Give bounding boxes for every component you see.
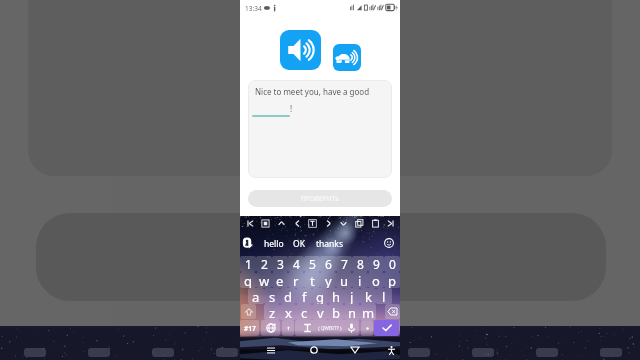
- button[interactable]: OK: [293, 238, 305, 250]
- button[interactable]: c: [296, 304, 312, 320]
- button[interactable]: 7: [336, 256, 352, 272]
- button[interactable]: d: [280, 288, 296, 304]
- button[interactable]: w: [256, 272, 272, 288]
- button[interactable]: Assistant: [242, 237, 253, 249]
- staticText: !: [290, 103, 293, 114]
- button[interactable]: Play slowly: [333, 44, 361, 71]
- staticText: 13:34: [245, 4, 262, 13]
- button[interactable]: p: [384, 272, 400, 288]
- staticText: p: [388, 272, 396, 288]
- button[interactable]: a: [248, 288, 264, 304]
- staticText: 2: [261, 256, 268, 272]
- button[interactable]: Symbols: [240, 320, 259, 336]
- button[interactable]: 3: [272, 256, 288, 272]
- button[interactable]: z: [264, 304, 280, 320]
- button[interactable]: 8: [352, 256, 368, 272]
- staticText: Nice to meet you, have a good: [255, 86, 370, 97]
- button[interactable]: 0: [384, 256, 400, 272]
- staticText: u: [340, 272, 349, 288]
- button[interactable]: thanks: [316, 238, 343, 250]
- button[interactable]: Select all: [244, 217, 256, 229]
- button[interactable]: Enter: [374, 320, 399, 336]
- staticText: #17: [244, 324, 256, 333]
- staticText: y: [325, 272, 332, 288]
- staticText: 6: [325, 256, 332, 272]
- staticText: t: [310, 272, 315, 288]
- staticText: f: [302, 288, 307, 304]
- button[interactable]: g: [312, 288, 328, 304]
- button[interactable]: Emoji: [384, 238, 394, 248]
- staticText: ПРОВЕРИТЬ: [301, 194, 340, 203]
- button[interactable]: Space: [295, 320, 359, 336]
- button[interactable]: m: [360, 304, 376, 320]
- button[interactable]: Voice input: [344, 320, 359, 336]
- button[interactable]: 5: [304, 256, 320, 272]
- button[interactable]: Select: [259, 217, 271, 229]
- button[interactable]: Up: [275, 217, 287, 229]
- button[interactable]: Down: [337, 217, 349, 229]
- button[interactable]: y: [320, 272, 336, 288]
- button[interactable]: Text: [306, 217, 318, 229]
- staticText: 0: [389, 256, 396, 272]
- staticText: a: [252, 288, 260, 304]
- button[interactable]: End: [384, 217, 396, 229]
- button[interactable]: 2: [256, 256, 272, 272]
- button[interactable]: u: [336, 272, 352, 288]
- button[interactable]: h: [328, 288, 344, 304]
- button[interactable]: Comma: [282, 320, 294, 336]
- staticText: v: [317, 304, 324, 320]
- button[interactable]: f: [296, 288, 312, 304]
- button[interactable]: v: [312, 304, 328, 320]
- button[interactable]: o: [368, 272, 384, 288]
- button[interactable]: b: [328, 304, 344, 320]
- button[interactable]: ПРОВЕРИТЬ: [248, 190, 392, 207]
- button[interactable]: Backspace: [385, 304, 400, 319]
- button[interactable]: k: [360, 288, 376, 304]
- button[interactable]: Paste: [369, 217, 381, 229]
- button[interactable]: i: [352, 272, 368, 288]
- staticText: b: [332, 304, 340, 320]
- staticText: l: [382, 288, 386, 304]
- staticText: s: [269, 288, 276, 304]
- button[interactable]: t: [304, 272, 320, 288]
- button[interactable]: Play pronunciation: [280, 30, 321, 70]
- staticText: 8: [357, 256, 364, 272]
- button[interactable]: x: [280, 304, 296, 320]
- staticText: h: [332, 288, 341, 304]
- button[interactable]: r: [288, 272, 304, 288]
- button[interactable]: n: [344, 304, 360, 320]
- staticText: 3: [277, 256, 284, 272]
- button[interactable]: 1: [240, 256, 256, 272]
- button[interactable]: Left: [291, 217, 303, 229]
- button[interactable]: q: [240, 272, 256, 288]
- button[interactable]: e: [272, 272, 288, 288]
- staticText: q: [244, 272, 252, 288]
- button[interactable]: Back: [349, 344, 361, 356]
- staticText: e: [276, 272, 284, 288]
- button[interactable]: 4: [288, 256, 304, 272]
- button[interactable]: 9: [368, 256, 384, 272]
- button[interactable]: Recents: [265, 344, 277, 356]
- staticText: 4: [293, 256, 300, 272]
- staticText: 5: [309, 256, 316, 272]
- staticText: 7: [341, 256, 348, 272]
- staticText: r: [293, 272, 299, 288]
- button[interactable]: hello: [264, 238, 284, 250]
- staticText: o: [372, 272, 380, 288]
- button[interactable]: Shift: [241, 304, 256, 319]
- button[interactable]: Right: [322, 217, 334, 229]
- button[interactable]: Accessibility: [385, 344, 397, 356]
- button[interactable]: s: [264, 288, 280, 304]
- button[interactable]: l: [376, 288, 392, 304]
- staticText: n: [348, 304, 357, 320]
- button[interactable]: j: [344, 288, 360, 304]
- button[interactable]: Home: [308, 344, 320, 356]
- button[interactable]: [252, 115, 290, 117]
- button[interactable]: Copy: [353, 217, 365, 229]
- button[interactable]: Period: [361, 320, 373, 336]
- button[interactable]: 6: [320, 256, 336, 272]
- staticText: z: [269, 304, 276, 320]
- staticText: k: [365, 288, 372, 304]
- button[interactable]: Change language: [261, 320, 280, 336]
- staticText: w: [259, 272, 270, 288]
